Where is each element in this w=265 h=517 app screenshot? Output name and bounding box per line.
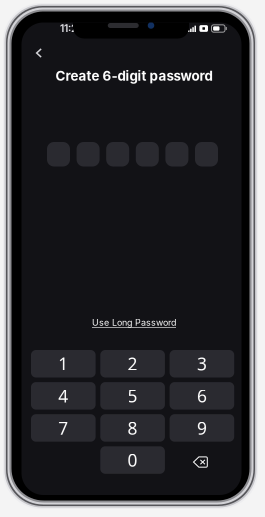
button[interactable]: 6 <box>170 382 234 410</box>
button[interactable]: 5 <box>100 382 165 410</box>
staticText: 3 <box>197 352 207 375</box>
staticText: Create 6-digit password <box>55 68 212 84</box>
staticText: 11:2 <box>60 22 77 35</box>
staticText: 9 <box>197 416 207 439</box>
button[interactable]: Use Long Password <box>24 316 244 329</box>
staticText: 2 <box>128 352 138 375</box>
button[interactable]: Delete <box>170 446 234 474</box>
button[interactable]: Back <box>24 40 54 66</box>
staticText: 8 <box>128 416 138 439</box>
staticText: 1 <box>58 352 68 375</box>
button[interactable]: 9 <box>170 414 234 442</box>
button[interactable]: 8 <box>100 414 165 442</box>
button[interactable]: 2 <box>100 350 165 377</box>
button[interactable]: 1 <box>31 350 96 377</box>
staticText: 7 <box>58 416 68 439</box>
staticText: 6 <box>197 384 207 407</box>
button[interactable]: 4 <box>31 382 96 410</box>
staticText: 0 <box>128 448 138 471</box>
staticText: Use Long Password <box>92 317 176 328</box>
button[interactable]: 7 <box>31 414 96 442</box>
button[interactable]: 0 <box>100 446 165 474</box>
staticText: 5 <box>128 384 138 407</box>
staticText: 4 <box>58 384 68 407</box>
button[interactable]: 3 <box>170 350 234 377</box>
